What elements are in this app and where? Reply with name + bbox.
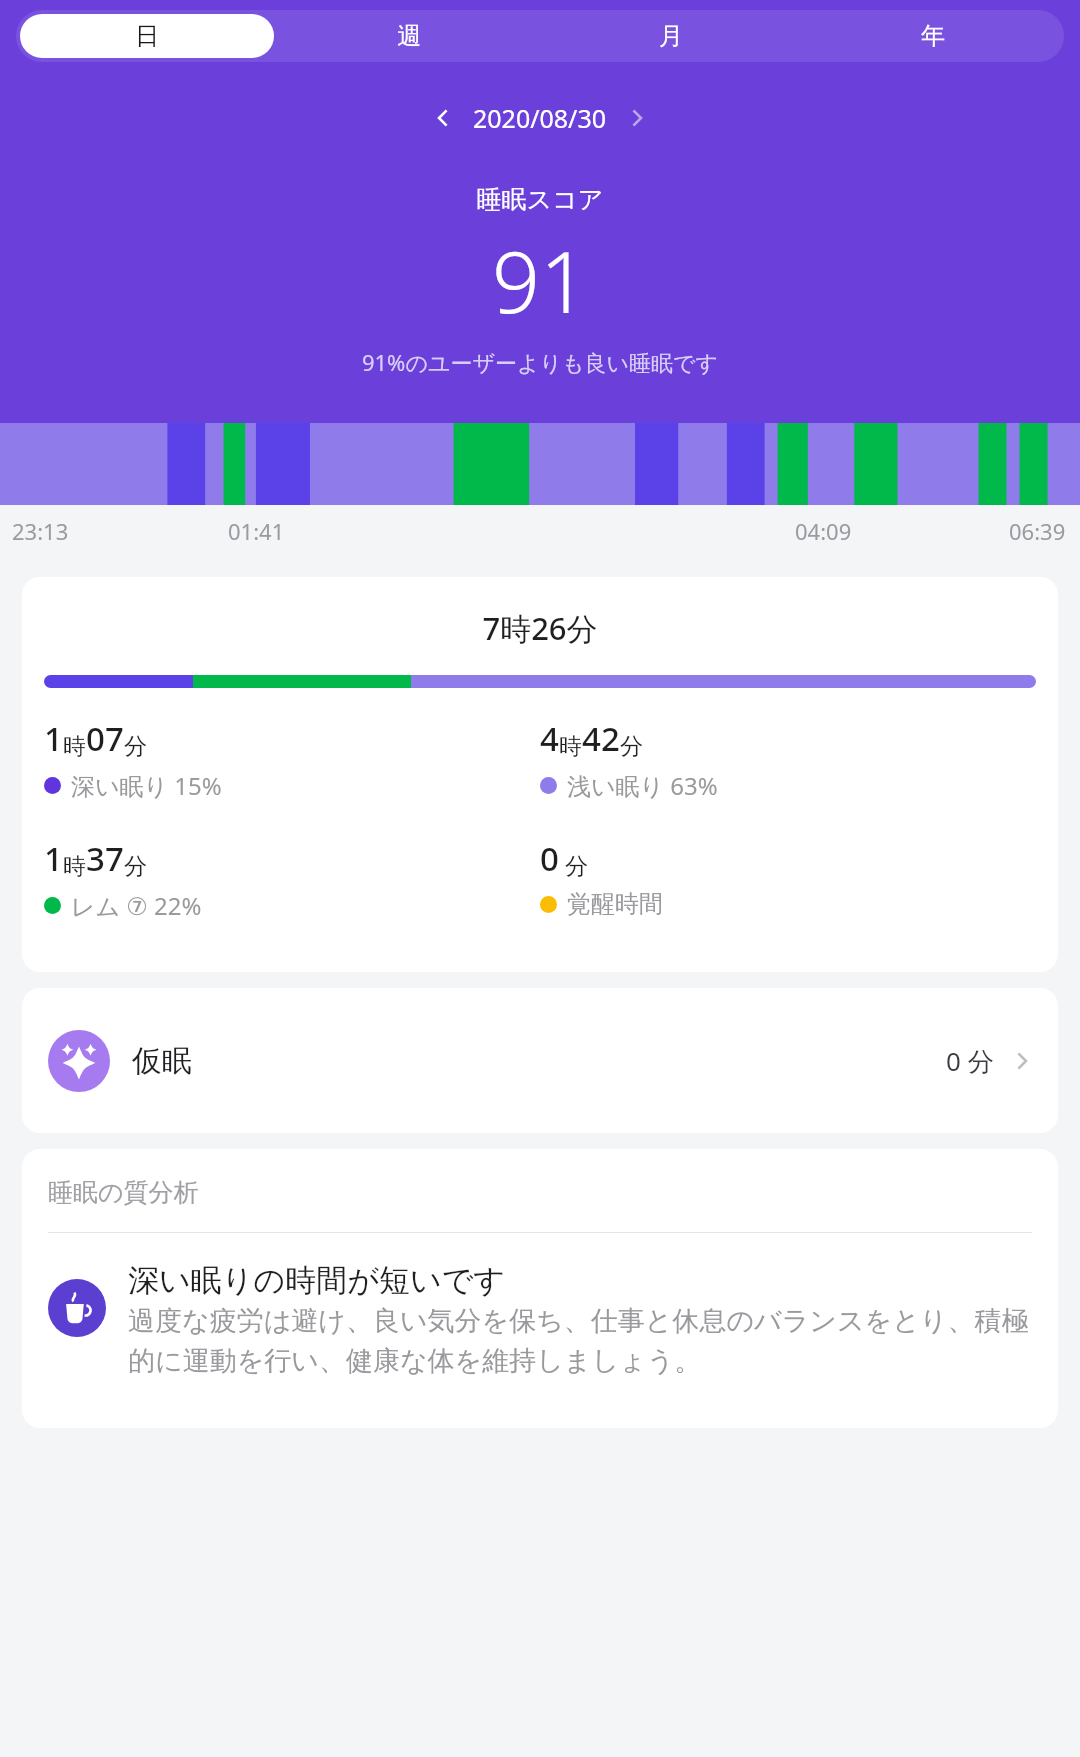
staticText: 91%のユーザーよりも良い睡眠です	[0, 347, 1080, 377]
staticText: 月	[659, 21, 683, 51]
button[interactable]: 睡眠の質分析	[22, 1149, 1058, 1428]
button[interactable]: 7時26分	[22, 577, 1058, 972]
staticText: 分	[124, 852, 147, 881]
staticText: 0	[540, 836, 559, 881]
staticText: 42	[582, 716, 620, 761]
staticText: 覚醒時間	[567, 889, 663, 919]
staticText: 分	[124, 732, 147, 761]
staticText: 時	[63, 732, 86, 761]
staticText: 時	[559, 732, 582, 761]
staticText: 睡眠スコア	[0, 184, 1080, 215]
staticText: 深い眠りの時間が短いです	[128, 1261, 506, 1300]
staticText: 週	[397, 21, 421, 51]
staticText: 1	[44, 836, 63, 881]
staticText: 年	[921, 21, 945, 51]
button[interactable]: 仮眠	[22, 988, 1058, 1133]
staticText: 時	[63, 852, 86, 881]
staticText: 0 分	[946, 1043, 994, 1079]
staticText: 23:13	[12, 516, 69, 546]
staticText: 分	[620, 732, 643, 761]
staticText: 1	[44, 716, 63, 761]
staticText: 深い眠り 15%	[71, 769, 222, 802]
staticText: 浅い眠り 63%	[567, 769, 718, 802]
staticText: レム ⑦ 22%	[71, 889, 202, 922]
staticText: 91	[0, 223, 1080, 337]
staticText: 日	[135, 21, 159, 51]
staticText: 仮眠	[132, 1042, 192, 1080]
staticText: 07	[86, 716, 124, 761]
staticText: 04:09	[795, 516, 852, 546]
button[interactable]: 日	[20, 14, 274, 58]
staticText: 01:41	[228, 516, 285, 546]
staticText: 過度な疲労は避け、良い気分を保ち、仕事と休息のバランスをとり、積極的に運動を行い…	[128, 1304, 1032, 1378]
button[interactable]: Next day	[615, 96, 659, 140]
button[interactable]: 週	[282, 14, 536, 58]
staticText: 7時26分	[44, 607, 1036, 649]
staticText: 06:39	[1009, 516, 1066, 546]
button[interactable]: 年	[806, 14, 1060, 58]
staticText: 2020/08/30	[473, 101, 607, 135]
staticText: 分	[565, 852, 588, 881]
staticText: 37	[86, 836, 124, 881]
button[interactable]: 月	[544, 14, 798, 58]
staticText: 4	[540, 716, 559, 761]
button[interactable]: Previous day	[421, 96, 465, 140]
staticText: 睡眠の質分析	[48, 1177, 199, 1208]
